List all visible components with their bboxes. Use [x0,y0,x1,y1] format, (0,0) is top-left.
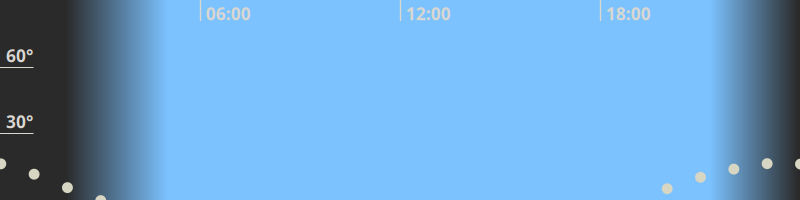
staticText: 60° [6,44,33,67]
staticText: 06:00 [206,2,251,25]
staticText: 12:00 [406,2,451,25]
staticText: 30° [6,110,33,133]
staticText: 18:00 [606,2,651,25]
